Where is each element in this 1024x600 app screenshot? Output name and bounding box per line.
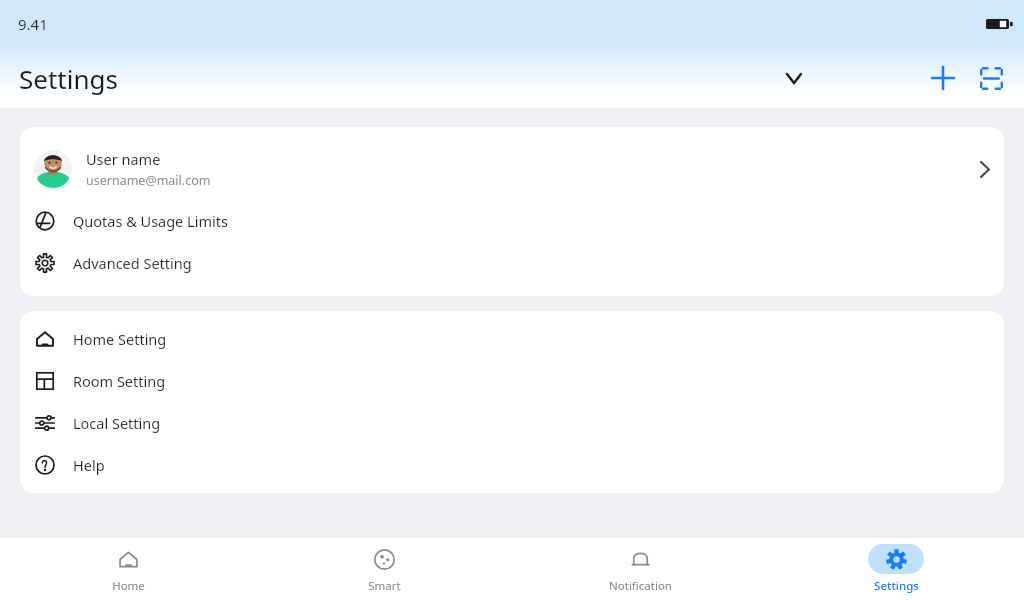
staticText: Quotas & Usage Limits bbox=[73, 211, 228, 231]
staticText: Home Setting bbox=[73, 329, 167, 349]
button[interactable]: Notification bbox=[512, 537, 768, 600]
staticText: 9.41 bbox=[18, 14, 48, 34]
button[interactable]: Local Setting bbox=[20, 402, 1004, 444]
button[interactable]: Settings bbox=[768, 537, 1024, 600]
staticText: Settings bbox=[19, 61, 118, 96]
staticText: Local Setting bbox=[73, 413, 161, 433]
staticText: Notification bbox=[609, 578, 672, 594]
button[interactable]: Help bbox=[20, 444, 1004, 486]
staticText: username@mail.com bbox=[86, 172, 211, 189]
button[interactable]: Add bbox=[920, 55, 966, 101]
button[interactable]: Smart bbox=[256, 537, 512, 600]
staticText: Help bbox=[73, 455, 105, 475]
button[interactable]: Scan bbox=[968, 55, 1014, 101]
staticText: Settings bbox=[874, 578, 919, 594]
button[interactable]: Quotas & Usage Limits bbox=[20, 200, 1004, 242]
button[interactable]: Home Setting bbox=[20, 318, 1004, 360]
staticText: Home bbox=[112, 578, 145, 594]
staticText: Advanced Setting bbox=[73, 253, 192, 273]
button[interactable]: Home bbox=[0, 537, 256, 600]
staticText: User name bbox=[86, 149, 161, 169]
button[interactable]: Room Setting bbox=[20, 360, 1004, 402]
button[interactable]: Expand bbox=[772, 56, 816, 100]
staticText: Smart bbox=[368, 578, 401, 594]
button[interactable]: Advanced Setting bbox=[20, 242, 1004, 284]
staticText: Room Setting bbox=[73, 371, 166, 391]
button[interactable]: User name bbox=[20, 138, 1004, 200]
